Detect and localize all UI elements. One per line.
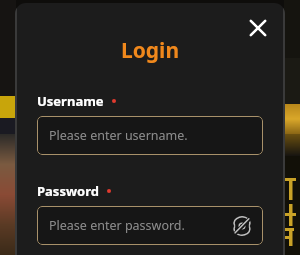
button[interactable]: Please enter username. — [37, 116, 263, 155]
button[interactable]: Please enter password. — [37, 206, 263, 245]
staticText: Please enter username. — [49, 127, 188, 144]
staticText: Password — [37, 182, 99, 200]
button[interactable]: Close — [241, 11, 275, 45]
staticText: Username — [37, 92, 104, 110]
staticText: Login — [15, 36, 285, 65]
button[interactable]: Show password — [229, 213, 255, 239]
staticText: Please enter password. — [49, 217, 185, 234]
